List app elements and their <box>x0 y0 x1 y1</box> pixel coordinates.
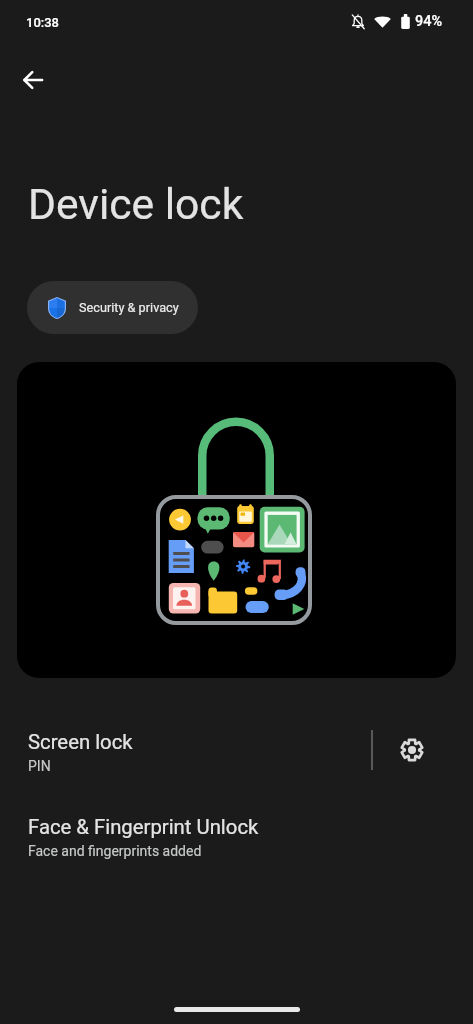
button[interactable]: Face & Fingerprint Unlock <box>0 802 473 868</box>
staticText: Security & privacy <box>79 300 179 315</box>
button[interactable]: Screen lock settings <box>373 714 450 786</box>
staticText: Screen lock <box>28 730 133 754</box>
button[interactable]: Back <box>9 56 57 104</box>
staticText: Face & Fingerprint Unlock <box>28 815 259 839</box>
button[interactable]: Security & privacy <box>27 281 198 334</box>
button[interactable]: Screen lock <box>0 714 371 786</box>
staticText: 94% <box>415 13 443 30</box>
staticText: 10:38 <box>26 15 60 30</box>
staticText: PIN <box>28 758 51 774</box>
staticText: Device lock <box>28 179 244 229</box>
staticText: Face and fingerprints added <box>28 843 202 859</box>
